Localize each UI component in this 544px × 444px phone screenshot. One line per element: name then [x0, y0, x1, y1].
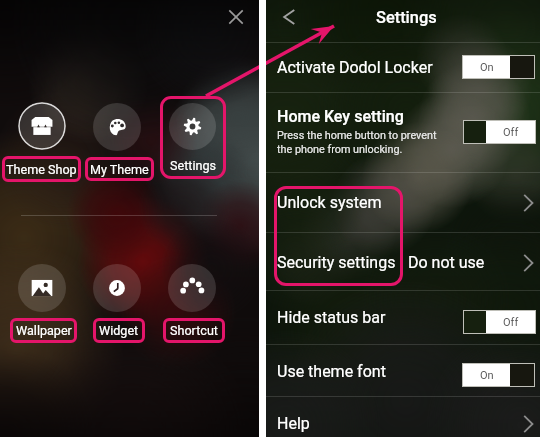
button[interactable]: Shortcut	[168, 264, 216, 312]
staticText: Hide status bar	[277, 308, 386, 327]
staticText: Security settings	[277, 253, 396, 272]
button[interactable]: Security settings	[266, 233, 540, 290]
button[interactable]: Widget	[93, 264, 141, 312]
staticText: Theme Shop	[6, 162, 77, 177]
staticText: My Theme	[90, 162, 149, 177]
staticText: Wallpaper	[16, 323, 72, 338]
staticText: Settings	[376, 8, 437, 27]
button[interactable]: Use theme font	[266, 345, 540, 396]
staticText: Settings	[170, 158, 216, 173]
button[interactable]: Off, toggle	[464, 121, 535, 143]
button[interactable]: Off, toggle	[464, 311, 535, 333]
button[interactable]: Hide status bar	[266, 291, 540, 344]
button[interactable]: Theme Shop	[2, 156, 81, 182]
staticText: Home Key setting	[277, 107, 404, 126]
button[interactable]: My Theme	[93, 103, 141, 151]
button[interactable]: On, toggle	[463, 56, 534, 78]
staticText: On	[480, 61, 494, 74]
staticText: Help	[277, 414, 310, 433]
button[interactable]: Back	[277, 5, 301, 29]
button[interactable]: On, toggle	[463, 364, 534, 386]
staticText: On	[480, 369, 494, 382]
button[interactable]: Close	[224, 5, 248, 29]
staticText: Shortcut	[170, 323, 218, 338]
button[interactable]: Settings	[160, 96, 226, 179]
button[interactable]: Activate Dodol Locker	[266, 43, 540, 92]
button[interactable]: Theme Shop	[18, 102, 66, 150]
staticText: Do not use	[408, 253, 485, 272]
staticText: Use theme font	[277, 362, 386, 381]
staticText: Widget	[99, 323, 139, 338]
button[interactable]: Unlock system	[266, 173, 540, 232]
button[interactable]: Widget	[93, 318, 145, 343]
staticText: Press the home button to prevent the pho…	[277, 129, 437, 156]
staticText: Off	[503, 126, 519, 139]
staticText: Unlock system	[277, 193, 382, 212]
staticText: Off	[503, 316, 519, 329]
button[interactable]: Home Key setting	[266, 93, 540, 172]
button[interactable]: Wallpaper	[18, 264, 66, 312]
button[interactable]: Settings	[169, 103, 216, 150]
button[interactable]: Shortcut	[163, 318, 225, 343]
button[interactable]: Help	[266, 397, 540, 437]
staticText: Activate Dodol Locker	[277, 58, 433, 77]
button[interactable]: My Theme	[85, 157, 154, 181]
button[interactable]: Wallpaper	[10, 318, 77, 343]
